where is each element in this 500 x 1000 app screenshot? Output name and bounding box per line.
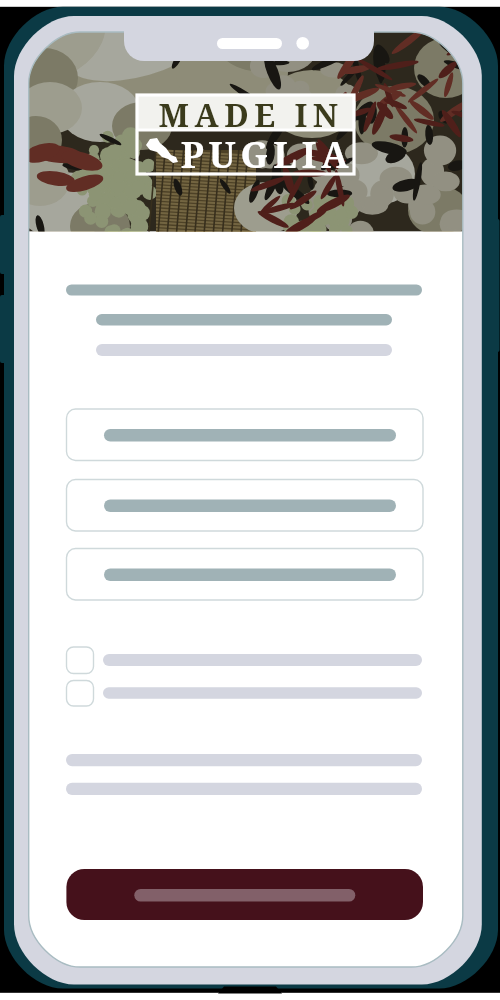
- button[interactable]: Input field: [66, 548, 423, 600]
- button[interactable]: Checkbox option: [66, 680, 423, 707]
- staticText: MADE IN: [145, 93, 357, 131]
- staticText: PUGLIA: [180, 130, 354, 172]
- button[interactable]: Input field: [66, 480, 423, 532]
- button[interactable]: Checkbox option: [66, 647, 423, 674]
- button[interactable]: Input field: [66, 409, 423, 461]
- button[interactable]: Continue: [66, 869, 423, 920]
